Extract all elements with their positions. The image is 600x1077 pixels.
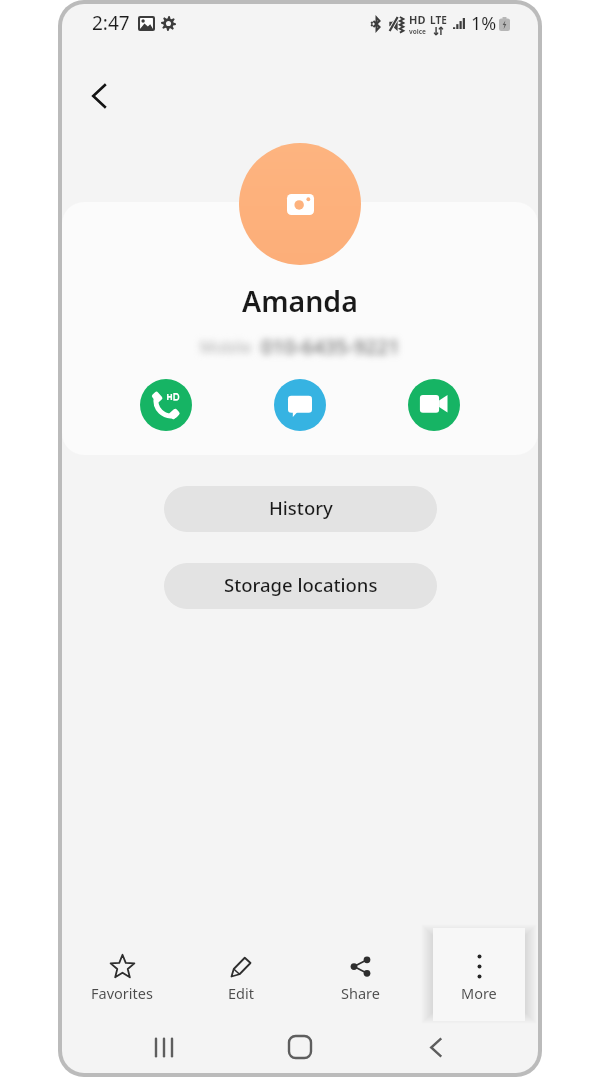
staticText: Amanda xyxy=(242,282,358,321)
staticText: Storage locations xyxy=(224,572,378,597)
staticText: Mobile xyxy=(200,336,252,358)
button[interactable]: Share xyxy=(314,928,406,1021)
button[interactable]: Back xyxy=(412,1023,460,1071)
button[interactable]: Favorites xyxy=(76,928,168,1021)
staticText: Favorites xyxy=(91,983,153,1003)
staticText: 1% xyxy=(471,11,497,36)
staticText: HD xyxy=(409,12,426,27)
button[interactable]: More xyxy=(433,928,525,1021)
staticText: Edit xyxy=(228,983,254,1003)
button[interactable]: Contact photo xyxy=(239,143,361,265)
button[interactable]: Message xyxy=(274,379,326,431)
button[interactable]: History xyxy=(164,486,437,532)
staticText: LTE xyxy=(430,13,447,27)
staticText: 010-6435-9221 xyxy=(261,333,400,360)
button[interactable]: Navigate up xyxy=(73,70,125,122)
button[interactable]: Home xyxy=(276,1023,324,1071)
button[interactable]: Video call xyxy=(408,379,460,431)
staticText: Share xyxy=(341,983,380,1003)
button[interactable]: Edit xyxy=(195,928,287,1021)
button[interactable]: Storage locations xyxy=(164,563,437,609)
staticText: History xyxy=(269,495,333,520)
staticText: voice xyxy=(409,27,426,36)
staticText: More xyxy=(461,983,497,1003)
staticText: 2:47 xyxy=(92,10,130,36)
button[interactable]: Call xyxy=(140,379,192,431)
button[interactable]: Recent apps xyxy=(140,1023,188,1071)
